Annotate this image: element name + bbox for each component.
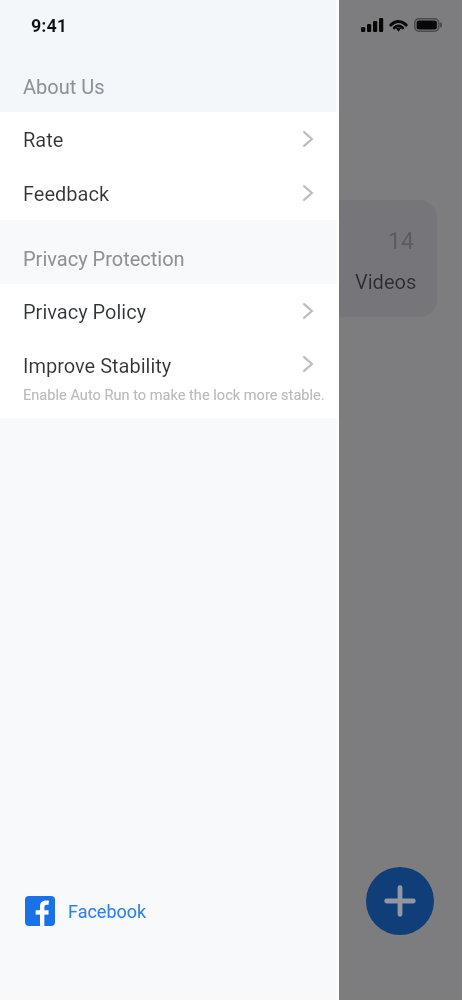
button[interactable]: Close navigation drawer <box>0 0 462 1000</box>
staticText: 14 <box>388 228 414 255</box>
staticText: Improve Stability <box>23 354 172 377</box>
staticText: Rate <box>23 128 64 151</box>
button[interactable]: Privacy Policy <box>0 284 339 338</box>
button[interactable]: Feedback <box>0 166 339 220</box>
staticText: 9:41 <box>31 15 68 36</box>
staticText: Videos <box>355 270 417 293</box>
button[interactable]: Facebook <box>0 883 339 939</box>
button[interactable]: Rate <box>0 112 339 166</box>
staticText: Privacy Policy <box>23 300 147 323</box>
staticText: About Us <box>23 75 105 98</box>
staticText: Enable Auto Run to make the lock more st… <box>23 386 325 403</box>
button[interactable]: Improve Stability <box>0 338 339 418</box>
button[interactable]: 14 <box>300 200 437 317</box>
staticText: Facebook <box>68 901 147 922</box>
staticText: Feedback <box>23 182 110 205</box>
button[interactable]: Add <box>366 867 434 935</box>
staticText: Privacy Protection <box>23 247 185 270</box>
